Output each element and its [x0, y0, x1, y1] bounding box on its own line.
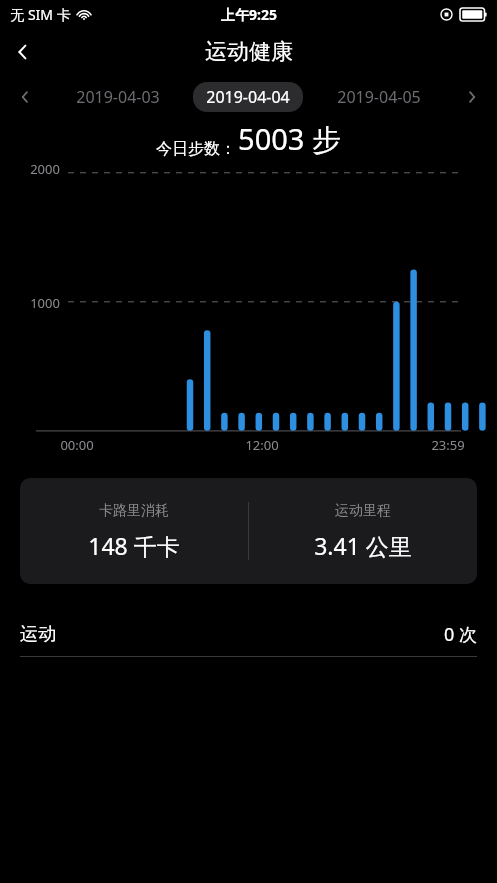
button[interactable]: 2019-04-05: [303, 86, 455, 108]
staticText: 2019-04-04: [206, 86, 290, 108]
staticText: 23:59: [431, 436, 465, 454]
staticText: 无 SIM 卡: [10, 5, 71, 24]
staticText: 运动: [20, 623, 56, 646]
button[interactable]: Previous day: [8, 80, 42, 114]
staticText: 上午9:25: [221, 5, 277, 24]
staticText: 148 千卡: [88, 530, 180, 561]
staticText: 5003 步: [238, 119, 341, 159]
staticText: 运动健康: [205, 38, 293, 66]
staticText: 2019-04-03: [76, 86, 160, 108]
staticText: 2000: [30, 160, 60, 178]
button[interactable]: 2019-04-03: [42, 86, 193, 108]
staticText: 2019-04-05: [337, 86, 421, 108]
button[interactable]: 卡路里消耗: [20, 478, 477, 584]
staticText: 12:00: [245, 436, 279, 454]
button[interactable]: 2019-04-04: [193, 82, 303, 112]
staticText: 3.41 公里: [314, 530, 412, 561]
button[interactable]: 运动: [0, 612, 497, 656]
staticText: 00:00: [60, 436, 94, 454]
staticText: 0 次: [444, 622, 477, 647]
staticText: 卡路里消耗: [99, 502, 169, 520]
staticText: 运动里程: [335, 502, 391, 520]
staticText: 1000: [30, 294, 60, 312]
staticText: 今日步数：: [156, 139, 236, 159]
button[interactable]: Next day: [455, 80, 489, 114]
button[interactable]: Back: [0, 29, 46, 75]
